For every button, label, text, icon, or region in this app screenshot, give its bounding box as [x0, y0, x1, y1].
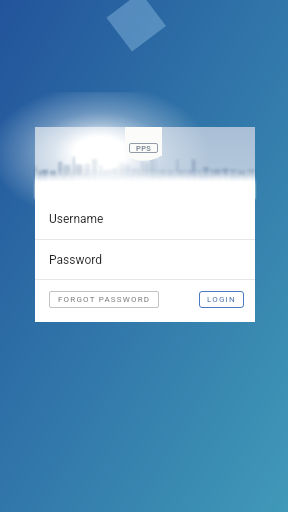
staticText: LOGIN [207, 295, 236, 304]
button[interactable]: Username [35, 199, 255, 239]
staticText: PPS [136, 144, 152, 153]
button[interactable]: LOGIN [199, 291, 244, 308]
button[interactable]: Password [35, 240, 255, 279]
staticText: Username [49, 212, 104, 226]
button[interactable]: FORGOT PASSWORD [49, 291, 159, 308]
staticText: Password [49, 253, 103, 267]
staticText: FORGOT PASSWORD [58, 295, 151, 304]
